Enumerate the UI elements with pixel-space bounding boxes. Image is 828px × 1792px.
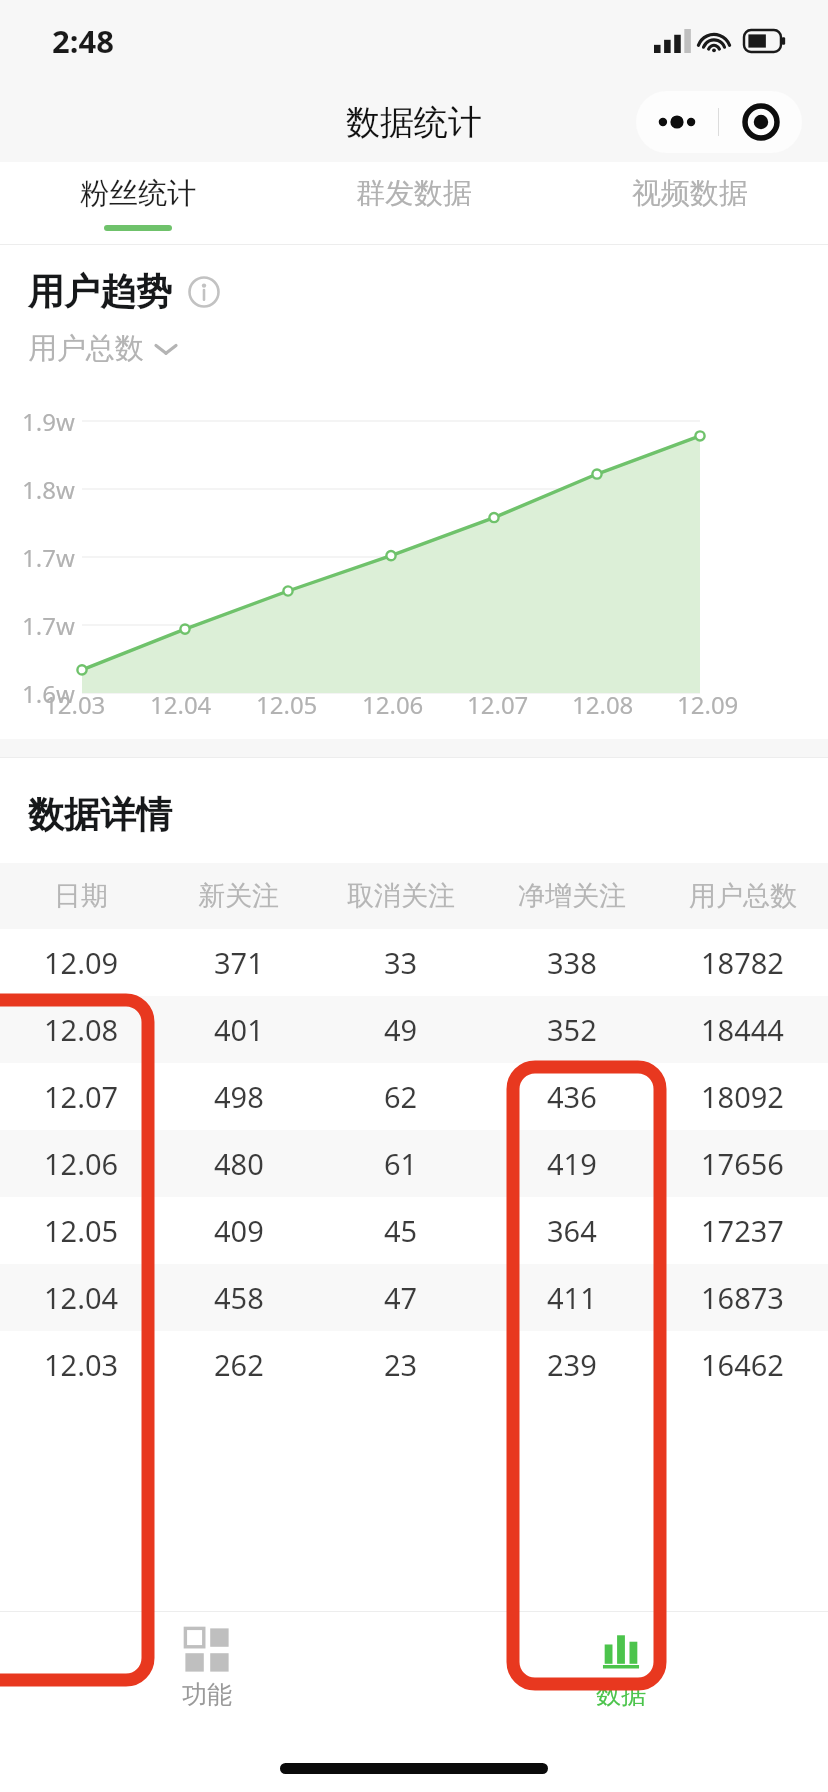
staticText: 1.6w [22, 677, 75, 710]
staticText: 1.8w [22, 473, 75, 506]
staticText: 23 [384, 1345, 418, 1384]
staticText: 419 [547, 1144, 597, 1183]
staticText: 239 [547, 1345, 597, 1384]
staticText: 12.08 [44, 1010, 119, 1049]
button[interactable]: 12.09 [0, 929, 828, 996]
staticText: 12.09 [44, 943, 119, 982]
staticText: 12.04 [150, 688, 212, 721]
staticText: 数据详情 [28, 792, 172, 837]
staticText: 新关注 [198, 879, 279, 913]
staticText: 458 [214, 1278, 264, 1317]
staticText: 498 [214, 1077, 264, 1116]
other: More [636, 91, 718, 153]
button[interactable]: 12.05 [0, 1197, 828, 1264]
staticText: 数据 [596, 1679, 646, 1710]
staticText: 12.03 [44, 688, 106, 721]
other: Close [719, 91, 802, 153]
staticText: 12.07 [44, 1077, 119, 1116]
staticText: 18782 [701, 943, 784, 982]
button[interactable]: 12.04 [0, 1264, 828, 1331]
button[interactable]: 用户总数 [28, 330, 178, 367]
staticText: 1.9w [22, 405, 75, 438]
staticText: 12.05 [44, 1211, 119, 1250]
staticText: 45 [384, 1211, 418, 1250]
staticText: 群发数据 [356, 175, 472, 212]
staticText: 17237 [701, 1211, 784, 1250]
staticText: 2:48 [52, 20, 114, 62]
staticText: 18444 [701, 1010, 784, 1049]
staticText: 262 [214, 1345, 264, 1384]
staticText: 用户总数 [689, 879, 797, 913]
staticText: 411 [547, 1278, 597, 1317]
staticText: 61 [384, 1144, 418, 1183]
staticText: 12.09 [677, 688, 739, 721]
staticText: 12.06 [362, 688, 424, 721]
staticText: 12.05 [256, 688, 318, 721]
staticText: 日期 [54, 879, 108, 913]
staticText: 功能 [182, 1679, 232, 1710]
button[interactable]: Info [188, 276, 220, 308]
staticText: 47 [384, 1278, 418, 1317]
staticText: 12.07 [467, 688, 529, 721]
staticText: 17656 [701, 1144, 784, 1183]
staticText: 18092 [701, 1077, 784, 1116]
button[interactable]: 12.06 [0, 1130, 828, 1197]
staticText: 粉丝统计 [80, 175, 196, 212]
staticText: 33 [384, 943, 418, 982]
staticText: 62 [384, 1077, 418, 1116]
button[interactable]: 12.08 [0, 996, 828, 1063]
staticText: 352 [547, 1010, 597, 1049]
staticText: 12.06 [44, 1144, 119, 1183]
button[interactable]: 群发数据 [276, 162, 552, 244]
staticText: 371 [214, 943, 264, 982]
button[interactable]: 视频数据 [552, 162, 828, 244]
staticText: 数据统计 [346, 101, 482, 144]
button[interactable]: 12.07 [0, 1063, 828, 1130]
staticText: 净增关注 [518, 879, 626, 913]
button[interactable]: 12.03 [0, 1331, 828, 1398]
staticText: 12.04 [44, 1278, 119, 1317]
staticText: 12.08 [572, 688, 634, 721]
staticText: 364 [547, 1211, 597, 1250]
staticText: 401 [214, 1010, 264, 1049]
staticText: 409 [214, 1211, 264, 1250]
staticText: 338 [547, 943, 597, 982]
staticText: 用户总数 [28, 330, 144, 367]
button[interactable]: 功能 [0, 1612, 414, 1724]
staticText: 49 [384, 1010, 418, 1049]
staticText: 16462 [701, 1345, 784, 1384]
staticText: 1.7w [22, 609, 75, 642]
staticText: 436 [547, 1077, 597, 1116]
button[interactable]: 数据 [414, 1612, 828, 1724]
staticText: 取消关注 [347, 879, 455, 913]
button[interactable]: More [636, 91, 802, 153]
staticText: 12.03 [44, 1345, 119, 1384]
staticText: 视频数据 [632, 175, 748, 212]
staticText: 480 [214, 1144, 264, 1183]
staticText: 用户趋势 [28, 269, 172, 314]
staticText: 16873 [701, 1278, 784, 1317]
button[interactable]: 粉丝统计 [0, 162, 276, 244]
staticText: 1.7w [22, 541, 75, 574]
